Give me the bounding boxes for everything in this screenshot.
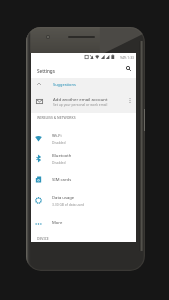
button[interactable]: Suggestions (31, 78, 136, 92)
staticText: WIRELESS & NETWORKS (37, 115, 76, 120)
button[interactable]: More options (125, 96, 134, 105)
staticText: Set up your personal or work email (53, 102, 108, 106)
button[interactable]: SIM cards (31, 169, 136, 190)
button[interactable]: Data usage (31, 190, 136, 211)
staticText: DEVICE (37, 236, 49, 241)
staticText: Add another email account (53, 96, 108, 102)
staticText: Settings (37, 68, 55, 74)
staticText: Disabled (52, 140, 66, 144)
staticText: Data usage (52, 195, 75, 201)
staticText: Disabled (52, 160, 66, 164)
staticText: SIM cards (52, 177, 72, 183)
staticText: 3.30 GB of data used (52, 202, 85, 206)
staticText: Bluetooth (52, 153, 72, 159)
staticText: Suggestions (53, 82, 76, 87)
button[interactable]: Add another email account (31, 92, 136, 112)
button[interactable]: More (31, 212, 136, 233)
button[interactable]: Bluetooth (31, 148, 136, 169)
staticText: 94% 1:33 (120, 55, 134, 59)
staticText: Wi-Fi (52, 133, 62, 139)
button[interactable]: Search (122, 62, 135, 75)
button[interactable]: Wi-Fi (31, 128, 136, 149)
staticText: More (52, 220, 63, 226)
